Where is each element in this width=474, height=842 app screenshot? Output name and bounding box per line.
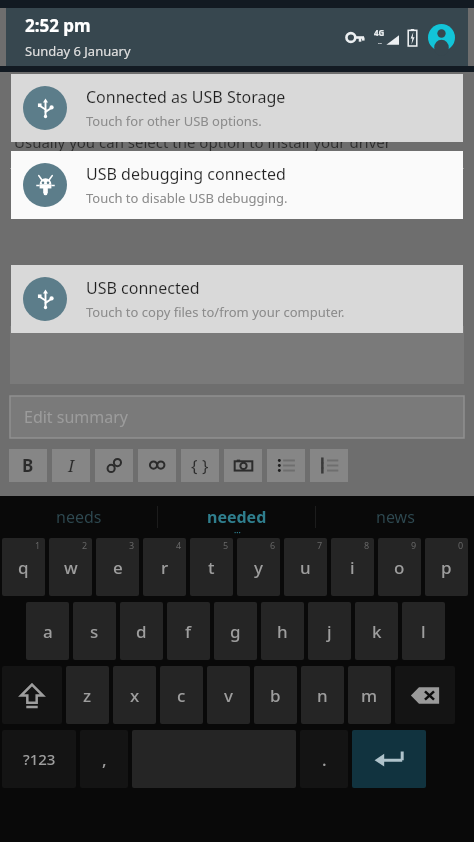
staticText: g bbox=[230, 620, 241, 643]
button[interactable]: Connected as USB Storage bbox=[11, 74, 463, 142]
button[interactable]: i bbox=[331, 538, 374, 596]
staticText: u bbox=[300, 556, 311, 579]
staticText: 9 bbox=[411, 539, 417, 551]
staticText: p bbox=[441, 556, 452, 579]
staticText: 7 bbox=[317, 539, 323, 551]
staticText: d bbox=[136, 620, 147, 643]
staticText: , bbox=[102, 748, 107, 771]
staticText: z bbox=[83, 684, 92, 707]
staticText: f bbox=[185, 620, 192, 643]
button[interactable]: t bbox=[190, 538, 233, 596]
button[interactable]: w bbox=[49, 538, 92, 596]
button[interactable]: c bbox=[160, 666, 203, 724]
button[interactable]: l bbox=[402, 602, 445, 660]
button[interactable]: Insert link bbox=[95, 449, 133, 482]
button[interactable]: g bbox=[214, 602, 257, 660]
staticText: 8 bbox=[364, 539, 370, 551]
staticText: USB debugging connected bbox=[86, 163, 286, 185]
staticText: t bbox=[208, 556, 215, 579]
staticText: h bbox=[277, 620, 288, 643]
button[interactable]: k bbox=[355, 602, 398, 660]
staticText: x bbox=[130, 684, 140, 707]
staticText: b bbox=[270, 684, 281, 707]
button[interactable]: a bbox=[26, 602, 69, 660]
button[interactable]: s bbox=[73, 602, 116, 660]
staticText: USB connected bbox=[86, 277, 200, 299]
staticText: Touch to copy files to/from your compute… bbox=[86, 303, 345, 321]
button[interactable]: Bulleted list bbox=[267, 449, 305, 482]
staticText: . bbox=[322, 748, 327, 771]
staticText: needed bbox=[207, 506, 267, 528]
button[interactable]: . bbox=[300, 730, 348, 788]
button[interactable]: Code bbox=[181, 449, 219, 482]
staticText: k bbox=[372, 620, 382, 643]
button[interactable]: p bbox=[425, 538, 468, 596]
button[interactable]: q bbox=[2, 538, 45, 596]
button[interactable]: needs bbox=[0, 496, 158, 538]
staticText: w bbox=[64, 556, 78, 579]
staticText: o bbox=[394, 556, 405, 579]
button[interactable]: Enter bbox=[352, 730, 426, 788]
button[interactable]: b bbox=[254, 666, 297, 724]
staticText: 5 bbox=[223, 539, 229, 551]
button[interactable]: ?123 bbox=[2, 730, 76, 788]
staticText: 1 bbox=[35, 539, 41, 551]
staticText: v bbox=[224, 684, 233, 707]
staticText: { } bbox=[191, 454, 209, 477]
button[interactable]: m bbox=[348, 666, 391, 724]
staticText: B bbox=[22, 454, 34, 477]
staticText: ·· bbox=[378, 39, 382, 49]
button[interactable]: Bold bbox=[9, 449, 47, 482]
staticText: l bbox=[421, 620, 426, 643]
button[interactable]: USB connected bbox=[11, 265, 463, 333]
staticText: 4 bbox=[176, 539, 182, 551]
staticText: s bbox=[90, 620, 99, 643]
staticText: i bbox=[350, 556, 355, 579]
button[interactable]: needed bbox=[158, 496, 316, 538]
staticText: Connected as USB Storage bbox=[86, 86, 286, 108]
button[interactable]: Insert image bbox=[224, 449, 262, 482]
staticText: e bbox=[113, 556, 123, 579]
staticText: 4G bbox=[374, 27, 385, 38]
button[interactable]: v bbox=[207, 666, 250, 724]
button[interactable]: h bbox=[261, 602, 304, 660]
button[interactable]: Backspace bbox=[395, 666, 455, 724]
staticText: ••• bbox=[234, 529, 241, 537]
staticText: m bbox=[361, 684, 378, 707]
staticText: j bbox=[327, 620, 332, 643]
button[interactable]: d bbox=[120, 602, 163, 660]
staticText: You need bbox=[14, 176, 84, 198]
button[interactable]: n bbox=[301, 666, 344, 724]
button[interactable]: USB debugging connected bbox=[11, 151, 463, 219]
button[interactable]: z bbox=[66, 666, 109, 724]
button[interactable]: u bbox=[284, 538, 327, 596]
button[interactable]: o bbox=[378, 538, 421, 596]
staticText: Touch for other USB options. bbox=[86, 112, 262, 130]
button[interactable]: Edit summary bbox=[10, 396, 464, 438]
button[interactable]: j bbox=[308, 602, 351, 660]
button[interactable]: , bbox=[80, 730, 128, 788]
staticText: ?123 bbox=[23, 749, 56, 769]
button[interactable]: x bbox=[113, 666, 156, 724]
button[interactable]: f bbox=[167, 602, 210, 660]
button[interactable]: r bbox=[143, 538, 186, 596]
staticText: 2:52 pm bbox=[25, 14, 91, 37]
button[interactable]: Quote bbox=[138, 449, 176, 482]
button[interactable]: Shift bbox=[2, 666, 62, 724]
staticText: n bbox=[317, 684, 328, 707]
button[interactable]: news bbox=[316, 496, 474, 538]
staticText: Edit summary bbox=[24, 406, 129, 428]
staticText: 3 bbox=[129, 539, 135, 551]
button[interactable]: e bbox=[96, 538, 139, 596]
button[interactable]: y bbox=[237, 538, 280, 596]
staticText: news bbox=[376, 506, 415, 528]
staticText: I bbox=[68, 454, 75, 477]
staticText: q bbox=[18, 556, 29, 579]
staticText: a bbox=[43, 620, 53, 643]
staticText: 2 bbox=[82, 539, 88, 551]
staticText: Touch to disable USB debugging. bbox=[86, 189, 288, 207]
staticText: Usually you can select the option to ins… bbox=[14, 132, 392, 152]
button[interactable]: Italic bbox=[52, 449, 90, 482]
button[interactable]: Numbered list bbox=[310, 449, 348, 482]
